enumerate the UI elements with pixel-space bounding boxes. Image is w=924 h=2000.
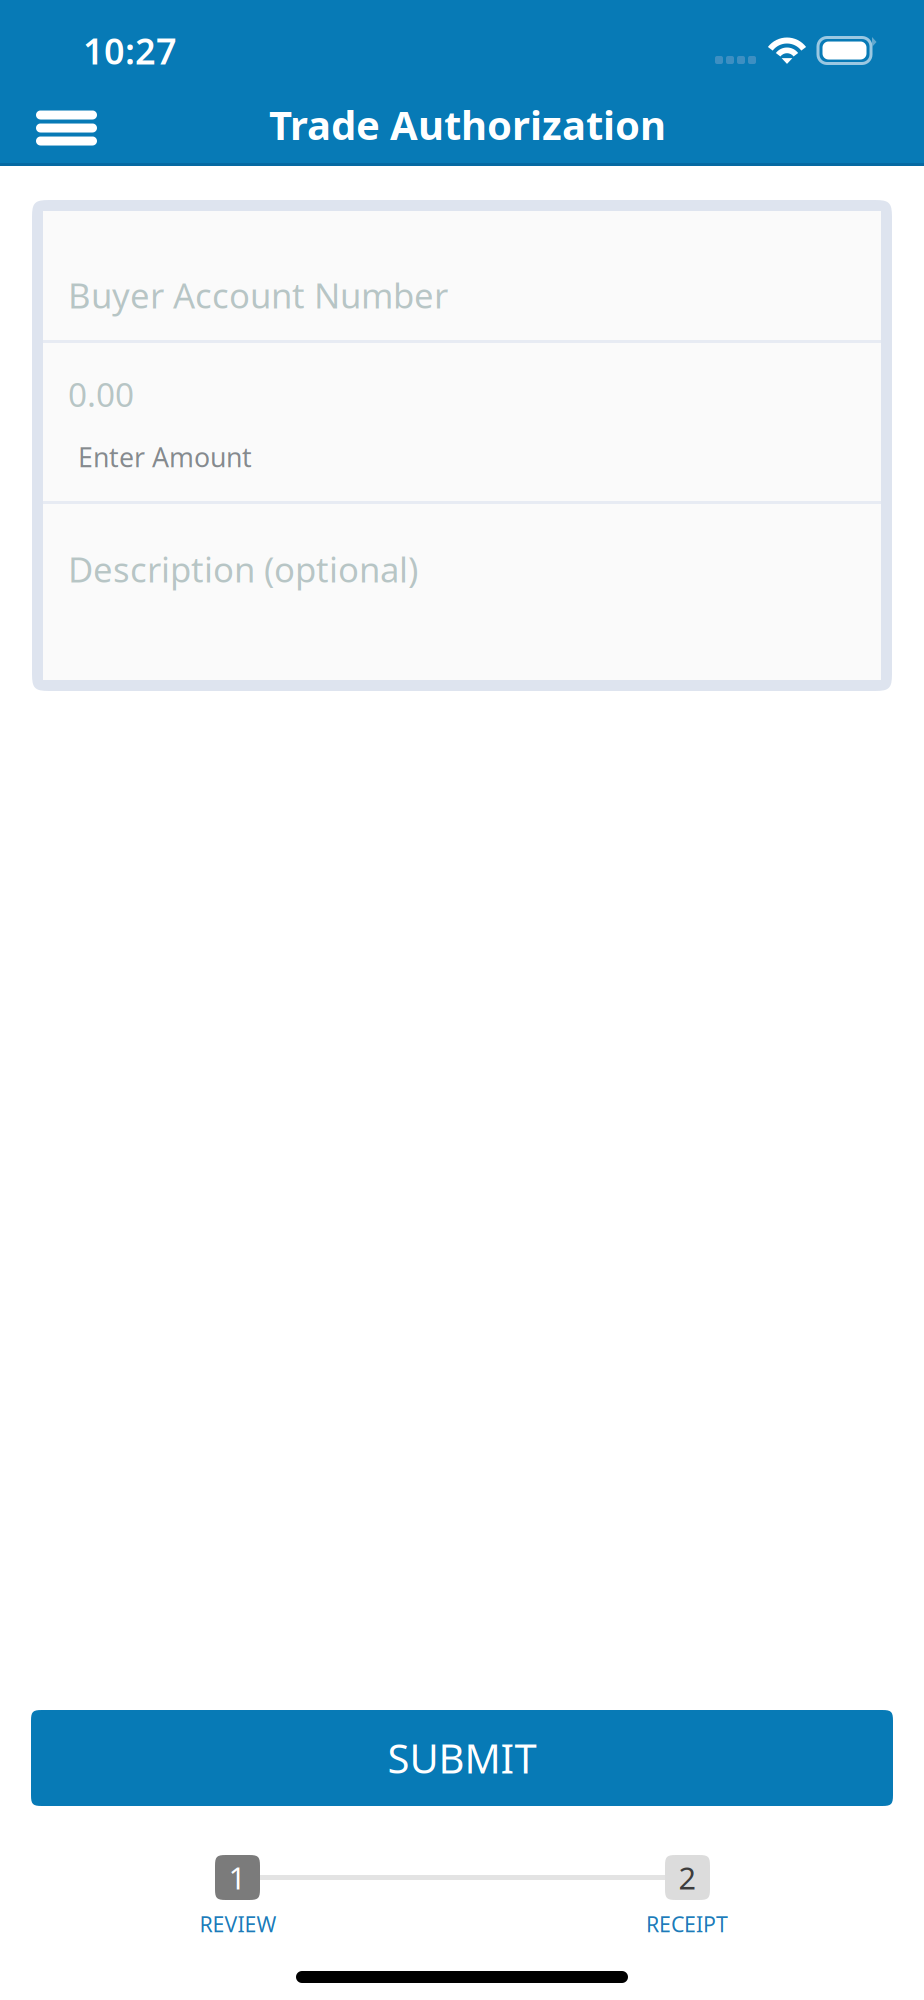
staticText: Description (optional): [68, 546, 418, 592]
button[interactable]: 0.00: [43, 343, 881, 501]
staticText: REVIEW: [199, 1910, 276, 1938]
staticText: 1: [228, 1857, 246, 1898]
staticText: Buyer Account Number: [68, 272, 448, 318]
button[interactable]: REVIEW: [168, 1910, 308, 1938]
button[interactable]: RECEIPT: [617, 1910, 757, 1938]
staticText: 10:27: [83, 27, 177, 74]
staticText: SUBMIT: [387, 1731, 536, 1784]
button[interactable]: Buyer Account Number: [43, 211, 881, 340]
button[interactable]: Menu: [0, 91, 111, 160]
button[interactable]: Step 1, Review: [215, 1855, 260, 1900]
staticText: RECEIPT: [646, 1910, 728, 1938]
staticText: 2: [678, 1857, 696, 1898]
button[interactable]: Step 2, Receipt: [665, 1855, 710, 1900]
button[interactable]: SUBMIT: [31, 1710, 893, 1806]
staticText: Enter Amount: [78, 439, 252, 475]
staticText: 0.00: [68, 372, 134, 416]
staticText: Trade Authorization: [269, 98, 666, 151]
button[interactable]: Description (optional): [43, 504, 881, 680]
